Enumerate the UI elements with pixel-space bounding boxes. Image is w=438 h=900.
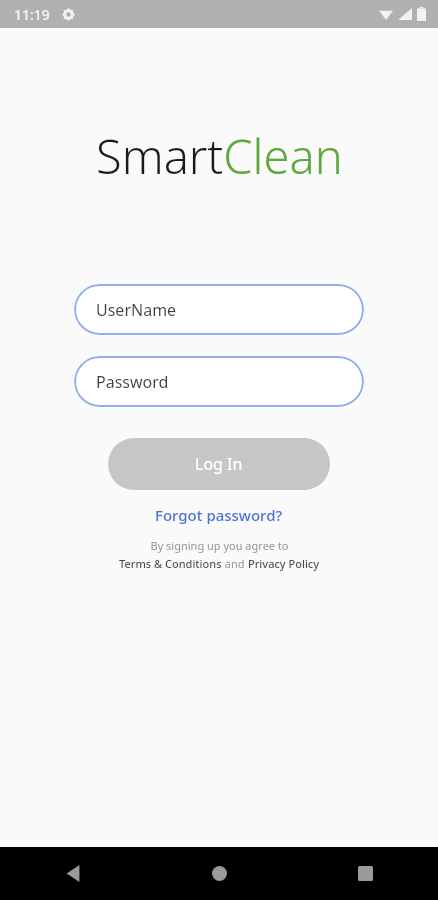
staticText: SmartClean: [96, 124, 343, 188]
button[interactable]: Privacy Policy: [248, 556, 320, 571]
staticText: Log In: [195, 453, 243, 475]
staticText: Forgot password?: [155, 505, 283, 525]
button[interactable]: Recent apps: [292, 847, 438, 900]
button[interactable]: Password: [74, 356, 364, 407]
button[interactable]: Back: [0, 847, 146, 900]
button[interactable]: Log In: [108, 438, 330, 490]
staticText: By signing up you agree to: [150, 538, 289, 553]
button[interactable]: Terms & Conditions: [119, 556, 222, 571]
button[interactable]: UserName: [74, 284, 364, 335]
staticText: Password: [96, 371, 169, 393]
staticText: and: [222, 556, 248, 571]
staticText: UserName: [96, 299, 177, 321]
staticText: Privacy Policy: [248, 556, 320, 571]
button[interactable]: Home: [146, 847, 292, 900]
staticText: Terms & Conditions: [119, 556, 222, 571]
staticText: 11:19: [14, 5, 50, 24]
button[interactable]: Forgot password?: [147, 502, 291, 528]
